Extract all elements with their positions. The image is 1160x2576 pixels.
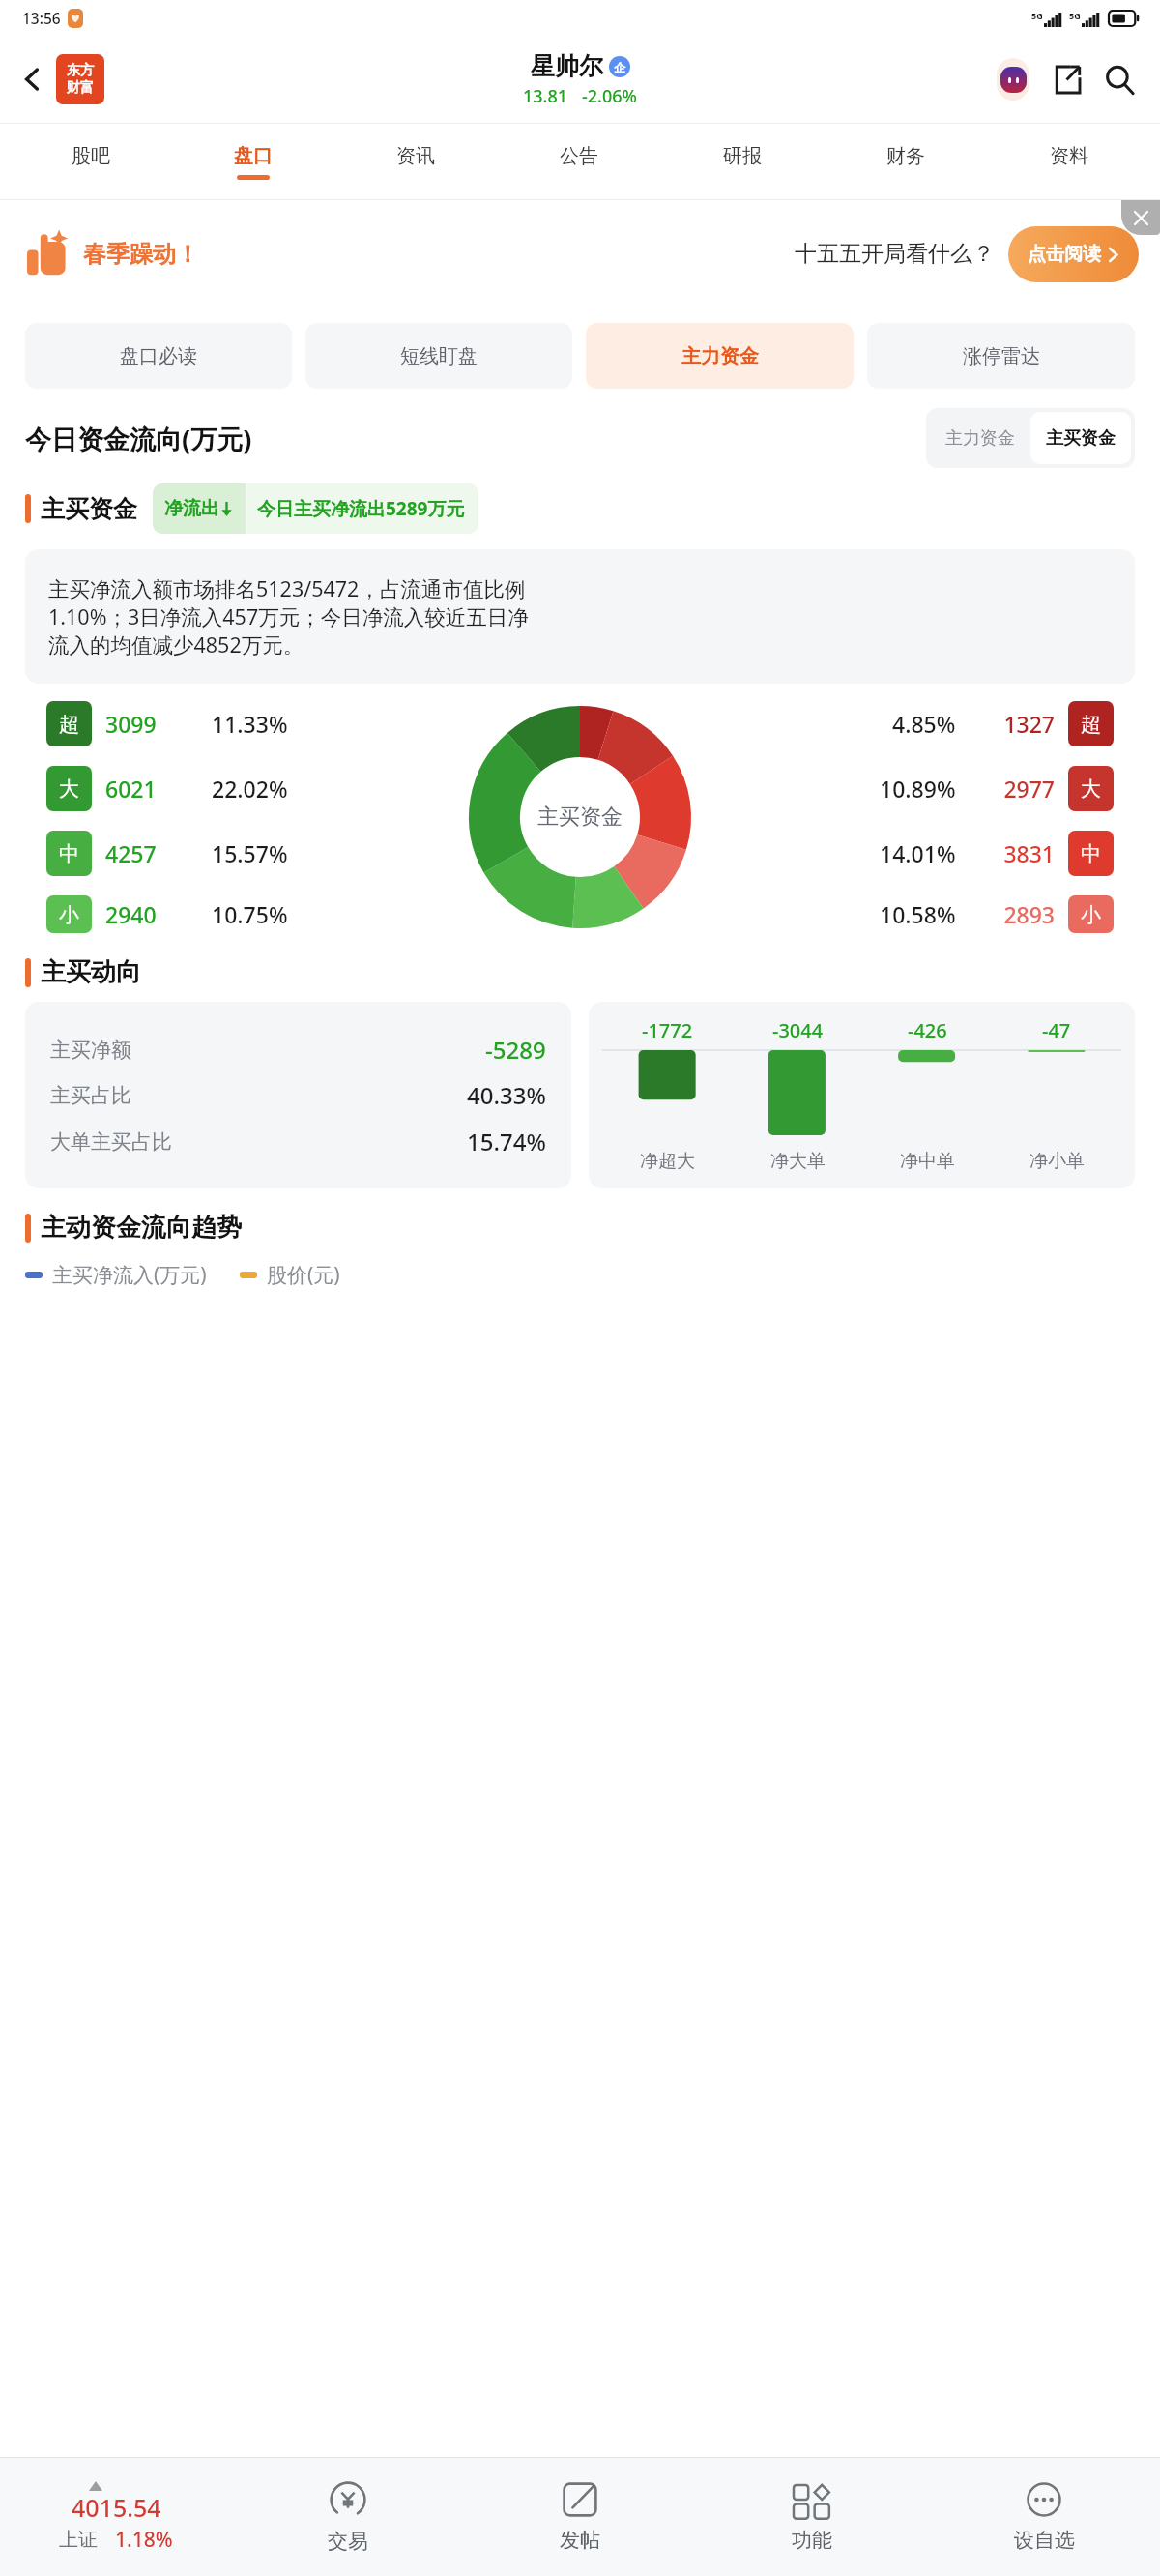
button[interactable]: 设自选 [928,2458,1160,2576]
staticText: 小 [1081,902,1101,927]
staticText: 3099 [105,709,157,739]
staticText: 14.01% [880,838,956,868]
staticText: 盘口必读 [120,344,197,368]
staticText: 4.85% [892,709,956,739]
staticText: 40.33% [467,1079,546,1111]
button[interactable]: 盘口必读 [25,323,292,389]
staticText: 资料 [1050,144,1088,168]
button[interactable]: 涨停雷达 [867,323,1135,389]
staticText: 主买净流入额市场排名5123/5472，占流通市值比例 [48,574,526,602]
staticText: 22.02% [212,774,288,804]
staticText: 发帖 [560,2528,600,2553]
staticText: 星帅尔 [531,51,603,81]
staticText: 主买净额 [50,1038,131,1063]
staticText: 11.33% [212,709,288,739]
staticText: -2.06% [582,84,637,108]
staticText: 上证 [59,2528,98,2552]
staticText: 主买资金 [41,494,137,524]
button[interactable]: 主买资金 [1030,412,1131,464]
button[interactable]: 发帖 [464,2458,696,2576]
staticText: 短线盯盘 [400,344,478,368]
staticText: 2893 [979,899,1055,929]
staticText: -3044 [772,1017,824,1043]
staticText: 企 [614,60,625,74]
button[interactable]: 关闭 [1121,200,1160,235]
staticText: 财务 [886,144,925,168]
button[interactable]: 公告 [497,124,660,200]
staticText: 今日主买净流出5289万元 [257,496,465,521]
staticText: 大 [59,776,79,802]
staticText: 大单主买占比 [50,1129,172,1155]
staticText: 10.58% [880,899,956,929]
staticText: 1.10%；3日净流入457万元；今日净流入较近五日净 [48,602,529,630]
button[interactable]: 东方财富 [56,54,104,104]
staticText: 超 [1081,712,1101,737]
staticText: 资讯 [396,144,435,168]
staticText: 大 [1081,776,1101,802]
staticText: 涨停雷达 [963,344,1040,368]
staticText: 主买资金 [537,804,623,831]
button[interactable]: 春季躁动！ [0,200,1160,307]
button[interactable]: 主力资金 [586,323,854,389]
staticText: 13.81 [523,84,568,108]
staticText: 交易 [328,2529,368,2554]
staticText: 设自选 [1014,2528,1075,2553]
button[interactable]: 财务 [824,124,987,200]
staticText: -5289 [485,1034,546,1066]
staticText: 5G [1031,10,1043,21]
staticText: 中 [59,841,79,866]
staticText: 1.18% [115,2526,173,2554]
button[interactable]: 分享 [1042,55,1090,103]
staticText: 流入的均值减少4852万元。 [48,630,304,659]
staticText: 东方 [67,62,94,79]
staticText: 净中单 [900,1150,955,1173]
staticText: 主买占比 [50,1083,131,1108]
staticText: 股价(元) [267,1261,340,1289]
button[interactable]: 点击阅读 [1008,226,1139,282]
staticText: 点击阅读 [1028,243,1101,266]
staticText: 主买资金 [1046,427,1116,450]
staticText: 盘口 [234,144,273,168]
staticText: 春季躁动！ [83,240,199,269]
staticText: -1772 [642,1017,693,1043]
staticText: -47 [1042,1017,1071,1043]
button[interactable]: 交易 [232,2458,464,2576]
staticText: 10.89% [880,774,956,804]
button[interactable]: 返回 [12,58,54,101]
button[interactable]: 资料 [987,124,1150,200]
staticText: 净流出 [164,497,219,520]
staticText: 主力资金 [681,344,759,368]
staticText: 净小单 [1029,1150,1085,1173]
staticText: 1327 [979,709,1055,739]
staticText: 4015.54 [72,2491,161,2524]
staticText: 股吧 [72,144,110,168]
staticText: 主买净流入(万元) [52,1261,207,1289]
staticText: 主力资金 [945,427,1015,450]
button[interactable]: 盘口 [172,124,334,200]
staticText: 15.57% [212,838,288,868]
staticText: -426 [908,1017,947,1043]
staticText: 4257 [105,838,157,868]
staticText: 2977 [979,774,1055,804]
staticText: 小 [59,902,79,927]
button[interactable]: 短线盯盘 [305,323,572,389]
staticText: 超 [59,712,79,737]
staticText: 主买动向 [41,956,141,988]
button[interactable]: 功能 [696,2458,928,2576]
button[interactable]: 资讯 [334,124,497,200]
button[interactable]: 智能助手 [990,56,1036,102]
button[interactable]: 研报 [660,124,824,200]
staticText: 财富 [67,79,94,97]
button[interactable]: 股吧 [10,124,172,200]
staticText: 5G [1069,10,1081,21]
staticText: 6021 [105,774,157,804]
staticText: 研报 [723,144,762,168]
staticText: 2940 [105,899,157,929]
staticText: 功能 [792,2528,832,2553]
staticText: 13:56 [22,8,61,28]
staticText: 中 [1081,841,1101,866]
button[interactable]: 主力资金 [930,412,1030,464]
button[interactable]: 4015.54 [0,2458,232,2576]
staticText: 3831 [979,838,1055,868]
button[interactable]: 搜索 [1094,54,1145,104]
